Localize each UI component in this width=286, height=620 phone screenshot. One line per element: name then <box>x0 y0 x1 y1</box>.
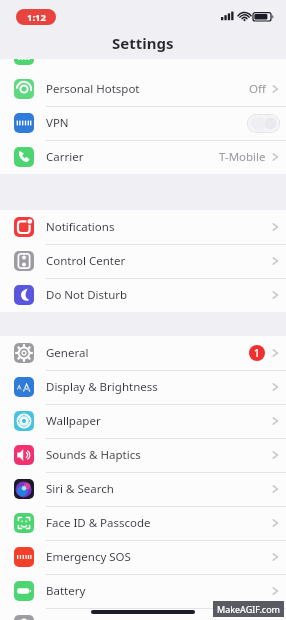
button[interactable]: Battery <box>0 574 286 608</box>
button[interactable]: Face ID & Passcode <box>0 506 286 540</box>
button[interactable]: Control Center <box>0 244 286 278</box>
staticText: T-Mobile <box>219 149 266 165</box>
staticText: Battery <box>46 583 86 599</box>
button[interactable]: Sounds & Haptics <box>0 438 286 472</box>
staticText: Settings <box>112 33 174 53</box>
staticText: General <box>46 345 89 361</box>
staticText: Cellular <box>46 47 87 63</box>
staticText: Face ID & Passcode <box>46 515 151 531</box>
button[interactable]: Privacy <box>0 608 286 620</box>
staticText: VPN <box>46 115 69 131</box>
staticText: Siri & Search <box>46 481 114 497</box>
staticText: Sounds & Haptics <box>46 447 141 463</box>
button[interactable]: Emergency SOS <box>0 540 286 574</box>
staticText: 1 <box>254 346 260 360</box>
staticText: Wallpaper <box>46 413 101 429</box>
staticText: Do Not Disturb <box>46 287 128 303</box>
button[interactable]: Carrier <box>0 140 286 174</box>
button[interactable]: Personal Hotspot <box>0 72 286 106</box>
button[interactable]: Cellular <box>0 38 286 72</box>
button[interactable]: Display & Brightness <box>0 370 286 404</box>
button[interactable]: Notifications <box>0 210 286 244</box>
staticText: 1:12 <box>27 11 46 24</box>
button[interactable]: General <box>0 336 286 370</box>
staticText: Settings <box>112 33 174 53</box>
staticText: Emergency SOS <box>46 549 131 565</box>
button[interactable]: VPN <box>0 106 286 140</box>
staticText: Off <box>249 81 266 97</box>
staticText: 1:12 <box>27 11 46 24</box>
staticText: Display & Brightness <box>46 379 158 395</box>
button[interactable]: Do Not Disturb <box>0 278 286 312</box>
staticText: Personal Hotspot <box>46 81 140 97</box>
staticText: Notifications <box>46 219 115 235</box>
staticText: MakeAGIF.com <box>217 603 280 615</box>
button[interactable]: Siri & Search <box>0 472 286 506</box>
button[interactable]: VPN toggle <box>247 114 280 133</box>
button[interactable]: Wallpaper <box>0 404 286 438</box>
staticText: Carrier <box>46 149 84 165</box>
staticText: Control Center <box>46 253 126 269</box>
